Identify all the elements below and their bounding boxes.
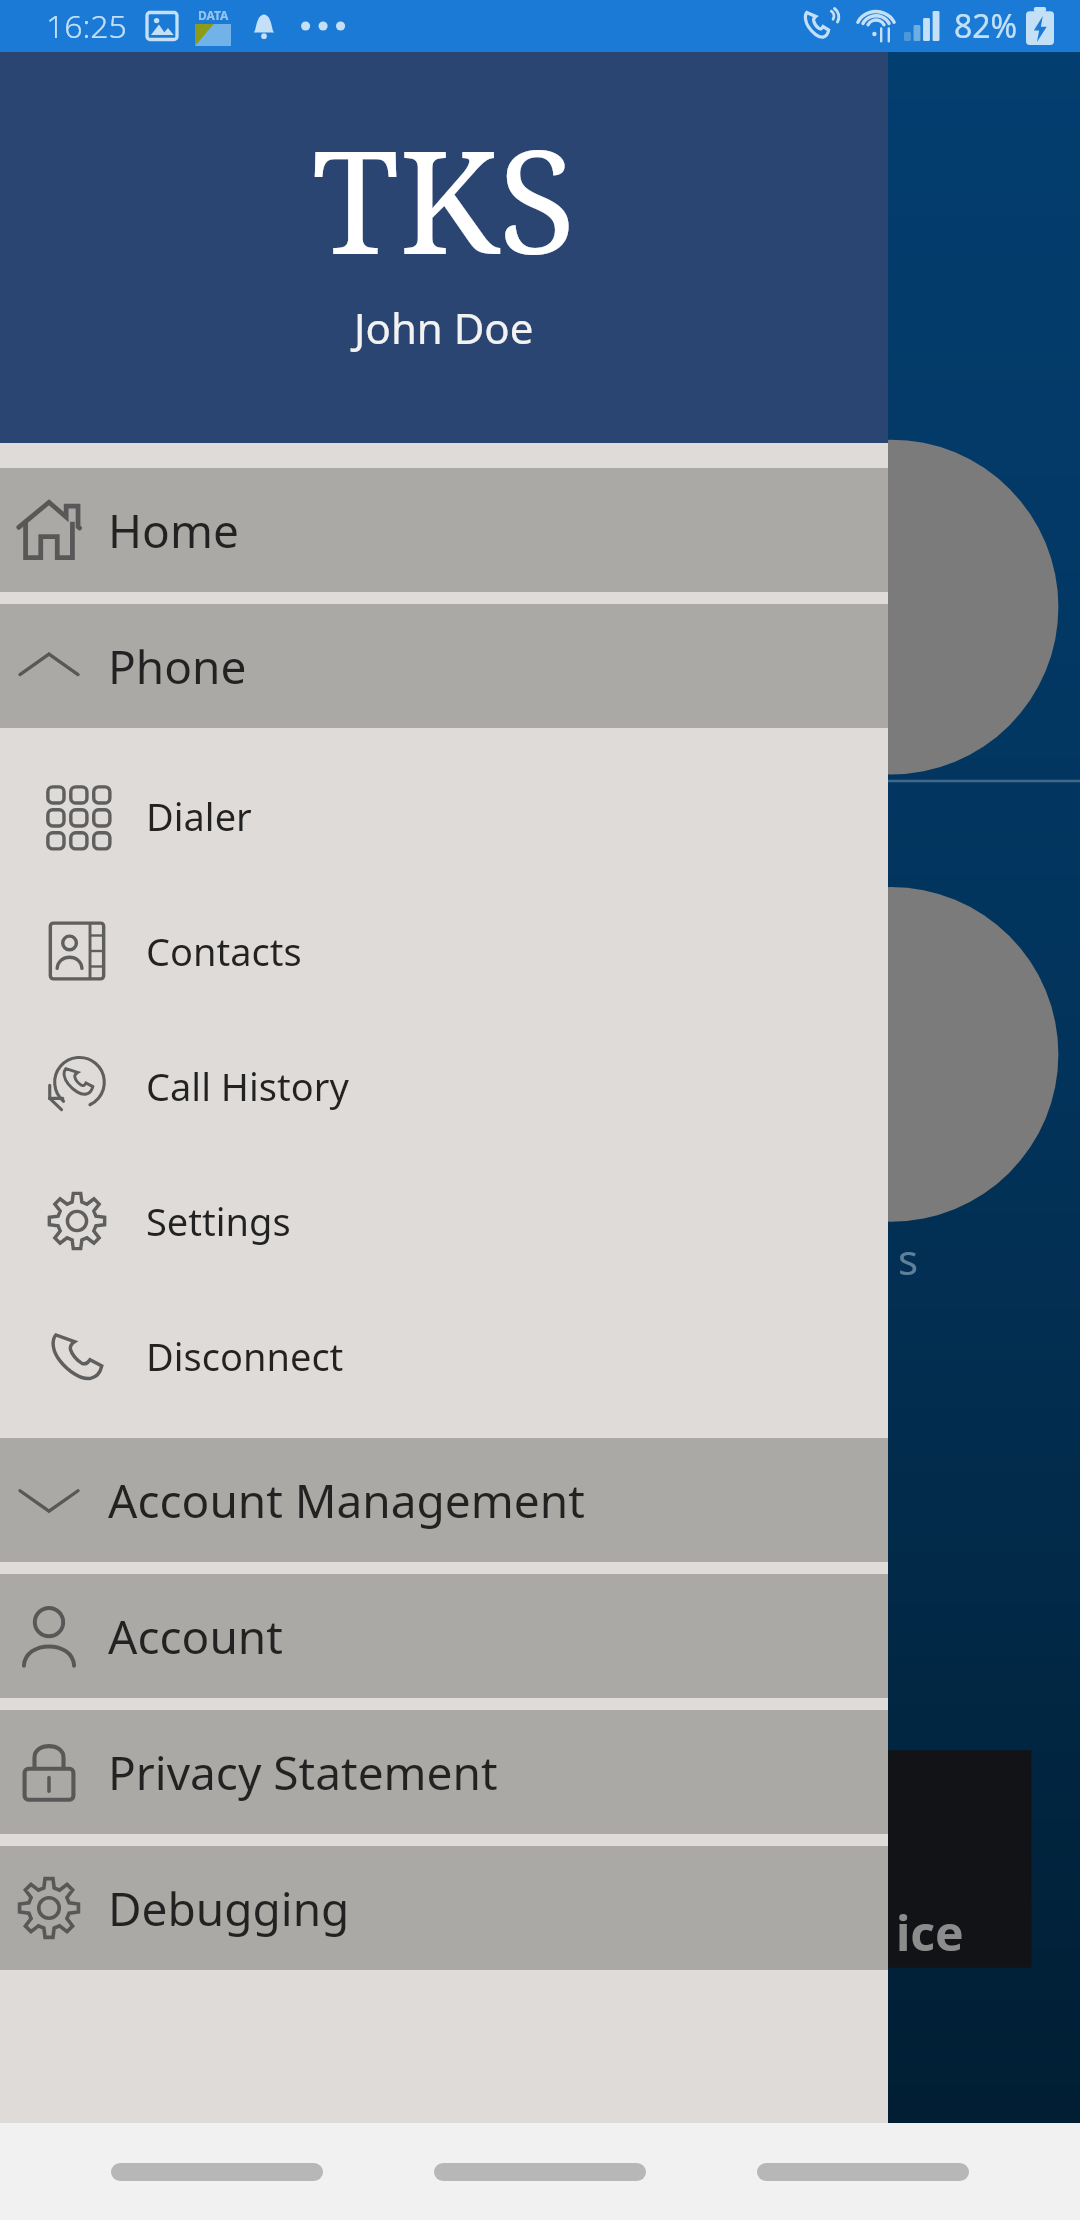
other: Wi-Fi calling — [802, 7, 840, 45]
staticText: Debugging — [108, 1877, 350, 1940]
staticText: TKS — [312, 102, 576, 295]
button[interactable]: Home — [0, 468, 888, 592]
button[interactable]: Debugging — [0, 1846, 888, 1970]
staticText: Phone — [108, 635, 247, 698]
staticText: Disconnect — [146, 1330, 344, 1382]
staticText: John Doe — [354, 299, 534, 356]
button[interactable]: Call History — [0, 1018, 888, 1153]
button[interactable]: Dialer — [0, 748, 888, 883]
staticText: ice — [896, 1900, 964, 1965]
button[interactable]: TKS — [0, 52, 888, 443]
button[interactable]: Disconnect — [0, 1288, 888, 1423]
staticText: Privacy Statement — [108, 1741, 498, 1804]
staticText: s — [898, 1230, 919, 1287]
button[interactable]: Phone — [0, 604, 888, 728]
staticText: 82% — [954, 4, 1018, 48]
staticText: Dialer — [146, 790, 252, 842]
button[interactable]: Privacy Statement — [0, 1710, 888, 1834]
staticText: Call History — [146, 1060, 349, 1112]
button[interactable]: Account — [0, 1574, 888, 1698]
staticText: Contacts — [146, 925, 302, 977]
button[interactable]: Account Management — [0, 1438, 888, 1562]
button[interactable]: Contacts — [0, 883, 888, 1018]
button[interactable]: Recents — [111, 2163, 323, 2181]
button[interactable]: Home — [434, 2163, 646, 2181]
staticText: DATA — [198, 7, 229, 23]
staticText: Settings — [146, 1195, 291, 1247]
button[interactable]: Back — [757, 2163, 969, 2181]
staticText: Home — [108, 499, 239, 562]
staticText: Account — [108, 1605, 283, 1668]
button[interactable]: Settings — [0, 1153, 888, 1288]
staticText: Account Management — [108, 1469, 585, 1532]
staticText: 16:25 — [46, 4, 127, 48]
